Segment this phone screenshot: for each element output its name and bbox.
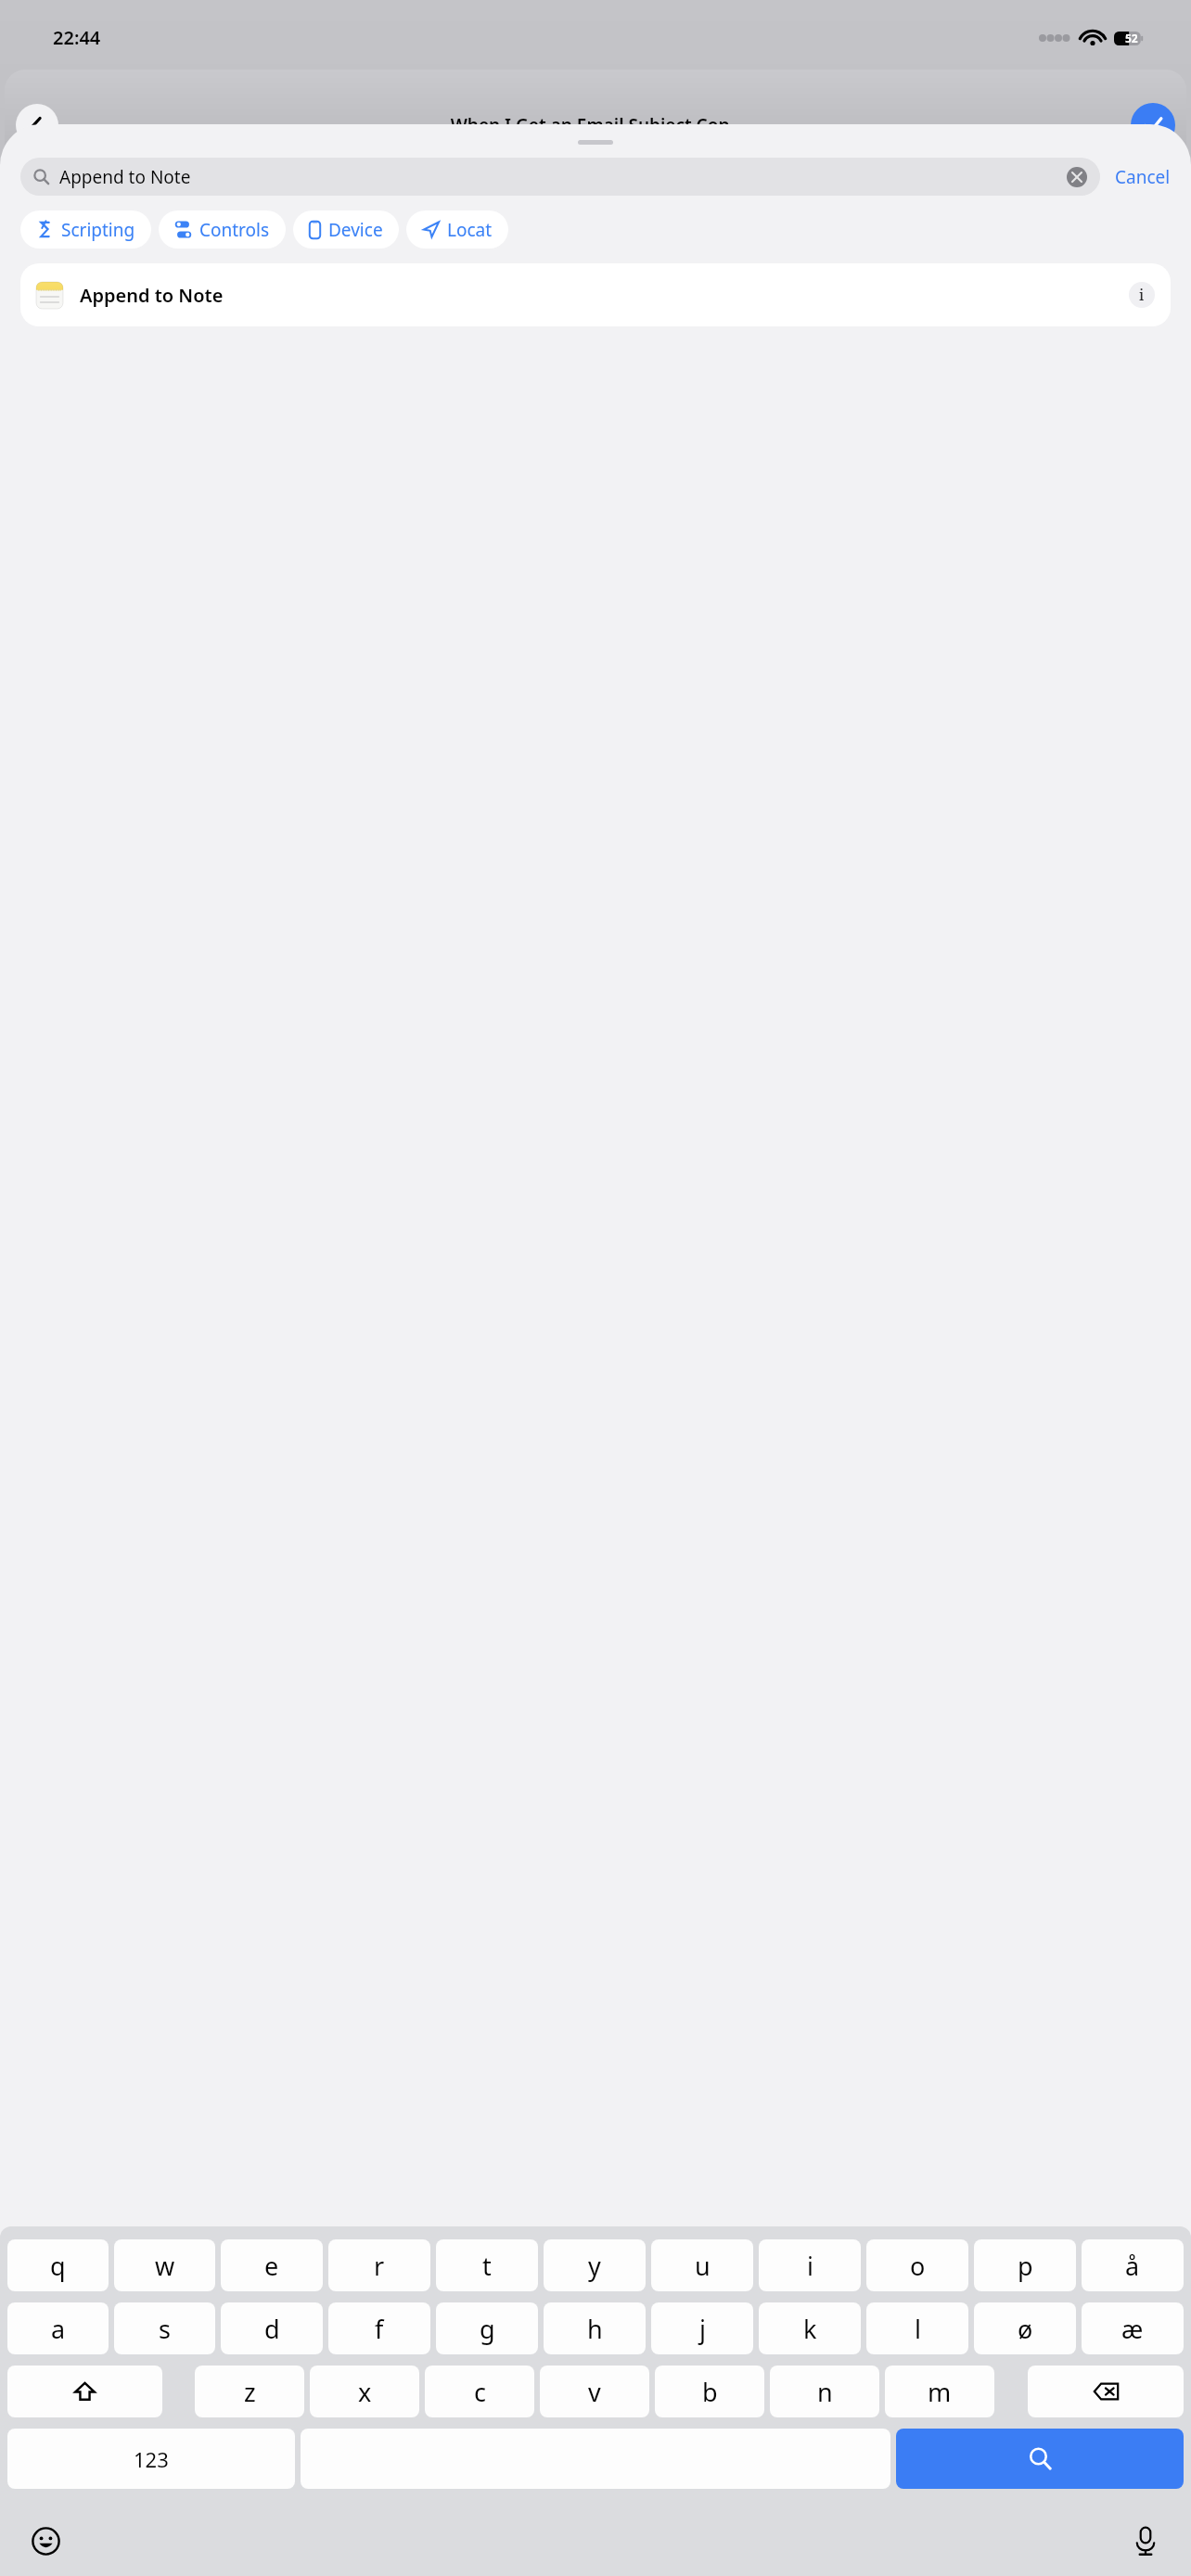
staticText: t [482, 2249, 492, 2283]
staticText: 22:44 [53, 25, 101, 50]
button[interactable]: Clear text [1067, 167, 1087, 187]
staticText: j [699, 2312, 706, 2346]
staticText: Device [328, 218, 383, 242]
button[interactable]: c [425, 2366, 534, 2417]
button[interactable]: a [7, 2302, 109, 2354]
staticText: a [51, 2312, 66, 2346]
staticText: Append to Note [59, 165, 1067, 189]
button[interactable]: æ [1082, 2302, 1184, 2354]
staticText: k [803, 2312, 817, 2346]
button[interactable]: Scripting [20, 210, 151, 249]
staticText: n [817, 2375, 833, 2409]
button[interactable]: Append to Note [20, 158, 1100, 196]
button[interactable]: More info [1129, 282, 1155, 308]
button[interactable]: w [114, 2239, 215, 2291]
button[interactable]: j [651, 2302, 753, 2354]
button[interactable]: q [7, 2239, 109, 2291]
button[interactable]: b [655, 2366, 764, 2417]
staticText: d [264, 2312, 280, 2346]
button[interactable]: x [310, 2366, 419, 2417]
button[interactable]: m [885, 2366, 994, 2417]
button[interactable]: v [540, 2366, 649, 2417]
staticText: e [264, 2249, 279, 2283]
button[interactable]: s [114, 2302, 215, 2354]
staticText: Append to Note [80, 283, 1129, 308]
staticText: ø [1018, 2312, 1033, 2346]
button[interactable]: r [328, 2239, 430, 2291]
staticText: r [374, 2249, 385, 2283]
staticText: l [915, 2312, 921, 2346]
staticText: x [358, 2375, 372, 2409]
staticText: f [375, 2312, 384, 2346]
staticText: g [480, 2312, 495, 2346]
staticText: s [159, 2312, 171, 2346]
staticText: c [474, 2375, 486, 2409]
button[interactable]: Search [896, 2429, 1184, 2489]
staticText: 52 [1125, 31, 1138, 45]
button[interactable]: å [1082, 2239, 1184, 2291]
button[interactable]: u [651, 2239, 753, 2291]
button[interactable]: Done [1131, 103, 1175, 147]
button[interactable]: y [544, 2239, 646, 2291]
button[interactable]: i [759, 2239, 861, 2291]
button[interactable]: Device [293, 210, 399, 249]
staticText: Locat [447, 218, 493, 242]
button[interactable]: f [328, 2302, 430, 2354]
button[interactable]: d [221, 2302, 323, 2354]
button[interactable]: l [866, 2302, 968, 2354]
staticText: Controls [199, 218, 270, 242]
button[interactable]: Emoji keyboard [20, 2516, 70, 2566]
button[interactable]: Append to Note [20, 263, 1171, 326]
button[interactable]: 123 [7, 2429, 295, 2489]
button[interactable]: Backspace [1028, 2366, 1184, 2417]
staticText: p [1018, 2249, 1033, 2283]
staticText: m [928, 2375, 952, 2409]
button[interactable]: ø [974, 2302, 1076, 2354]
staticText: y [588, 2249, 601, 2283]
staticText: 123 [134, 2445, 169, 2473]
button[interactable]: p [974, 2239, 1076, 2291]
staticText: å [1125, 2249, 1140, 2283]
button[interactable]: t [436, 2239, 538, 2291]
staticText: i [1139, 285, 1145, 305]
staticText: o [910, 2249, 926, 2283]
staticText: b [702, 2375, 718, 2409]
button[interactable]: h [544, 2302, 646, 2354]
button[interactable]: Cancel [1113, 159, 1172, 195]
staticText: i [807, 2249, 813, 2283]
staticText: u [695, 2249, 711, 2283]
button[interactable]: Controls [159, 210, 286, 249]
staticText: Cancel [1115, 165, 1171, 189]
staticText: q [50, 2249, 66, 2283]
staticText: v [588, 2375, 601, 2409]
button[interactable]: n [770, 2366, 879, 2417]
button[interactable]: g [436, 2302, 538, 2354]
staticText: z [244, 2375, 256, 2409]
button[interactable]: Locat [406, 210, 508, 249]
button[interactable]: o [866, 2239, 968, 2291]
staticText: æ [1121, 2312, 1144, 2346]
staticText: h [587, 2312, 603, 2346]
staticText: Scripting [61, 218, 135, 242]
button[interactable]: k [759, 2302, 861, 2354]
button[interactable]: Dictation [1121, 2516, 1171, 2566]
staticText: w [155, 2249, 175, 2283]
button[interactable]: Shift [7, 2366, 162, 2417]
button[interactable]: Back [16, 104, 58, 147]
button[interactable]: e [221, 2239, 323, 2291]
staticText: When I Get an Email Subject Con... [73, 113, 1121, 137]
button[interactable]: z [195, 2366, 304, 2417]
